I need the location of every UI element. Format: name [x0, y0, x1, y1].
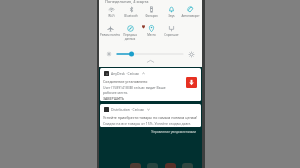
button[interactable]: AnyDesk	[186, 77, 197, 88]
staticText: Режим полёта	[100, 33, 120, 37]
button[interactable]: Понедельник, 4 марта	[105, 0, 149, 4]
button[interactable]: Wi-Fi	[101, 6, 121, 18]
staticText: Передача данных	[123, 33, 137, 41]
button[interactable]	[117, 51, 183, 57]
staticText: Место	[147, 33, 156, 37]
button[interactable]: ЗАВЕРШИТЬ	[103, 96, 125, 101]
staticText: Фонарик	[145, 14, 158, 18]
button[interactable]: Distribution · Сейчас	[100, 104, 201, 127]
button[interactable]: App	[130, 163, 141, 168]
button[interactable]: Bluetooth	[121, 6, 141, 18]
button[interactable]: Фонарик	[141, 6, 161, 18]
button[interactable]: Передача данных	[120, 25, 140, 41]
button[interactable]: App	[165, 163, 176, 168]
staticText: Скидки на все товары от 15%. Успейте ски…	[103, 121, 191, 126]
staticText: Звук	[168, 14, 175, 18]
button[interactable]: AnyDesk · Сейчас	[100, 68, 201, 101]
button[interactable]: Управление уведомлениями	[99, 130, 196, 134]
staticText: Wi-Fi	[108, 14, 115, 18]
staticText: Bluetooth	[124, 14, 138, 18]
staticText: Соединение установлено	[103, 79, 148, 84]
staticText: AnyDesk · Сейчас	[111, 71, 140, 76]
button[interactable]: Автоповорот	[181, 6, 200, 18]
button[interactable]: Звук	[161, 6, 181, 18]
button[interactable]: Место	[141, 25, 161, 37]
button[interactable]: Скриншот	[161, 25, 181, 37]
staticText: User (158914183B) сейчас видит Ваше рабо…	[103, 85, 166, 95]
staticText: Успейте приобрести товары по самым низки…	[103, 115, 198, 120]
staticText: Скриншот	[164, 33, 179, 37]
staticText: Автоповорот	[181, 14, 200, 18]
button[interactable]: App	[182, 163, 193, 168]
staticText: Distribution · Сейчас	[111, 107, 145, 112]
button[interactable]: Режим полёта	[100, 25, 120, 37]
button[interactable]: App	[147, 163, 158, 168]
